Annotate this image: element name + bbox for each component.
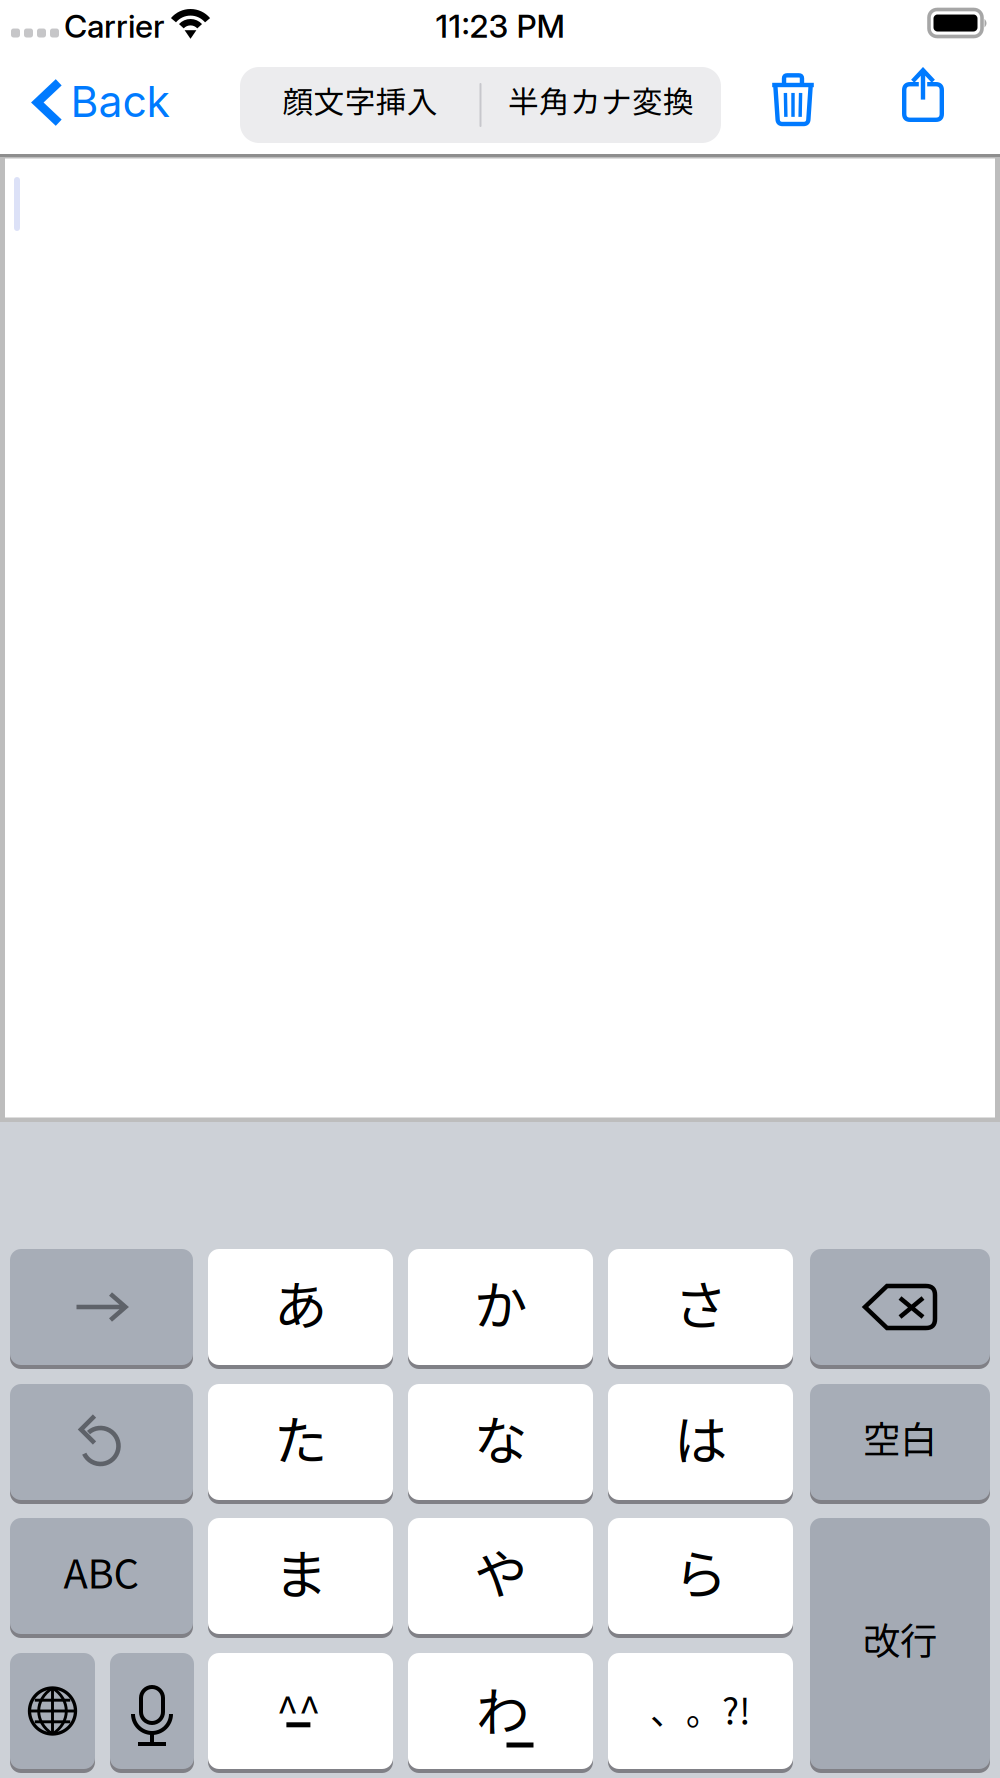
button[interactable]: わ: [408, 1651, 593, 1771]
staticText: ABC: [63, 1542, 139, 1600]
button[interactable]: 、。?!: [608, 1651, 793, 1771]
staticText: 、。?!: [650, 1683, 751, 1735]
button[interactable]: 顔文字挿入: [240, 67, 480, 143]
button[interactable]: Undo: [10, 1382, 193, 1502]
staticText: さ: [674, 1263, 727, 1341]
button[interactable]: 半角カナ変換: [480, 67, 721, 143]
button[interactable]: Delete: [747, 50, 839, 148]
staticText: 顔文字挿入: [282, 78, 437, 122]
button[interactable]: Back: [0, 56, 190, 154]
button[interactable]: あ: [208, 1247, 393, 1367]
staticText: Back: [70, 76, 169, 127]
button[interactable]: ま: [208, 1516, 393, 1636]
staticText: ^^: [276, 1680, 320, 1738]
button[interactable]: Delete: [810, 1247, 990, 1367]
button[interactable]: ABC: [10, 1516, 193, 1636]
button[interactable]: Share: [877, 46, 969, 144]
button[interactable]: か: [408, 1247, 593, 1367]
staticText: な: [474, 1398, 527, 1476]
button[interactable]: た: [208, 1382, 393, 1502]
staticText: は: [674, 1398, 727, 1476]
staticText: 改行: [863, 1611, 937, 1666]
button[interactable]: 改行: [810, 1516, 990, 1771]
button[interactable]: ら: [608, 1516, 793, 1636]
button[interactable]: Next candidate: [10, 1247, 193, 1367]
staticText: 11:23 PM: [435, 7, 564, 45]
staticText: Carrier: [64, 7, 165, 45]
button[interactable]: な: [408, 1382, 593, 1502]
staticText: わ: [476, 1670, 529, 1747]
staticText: 空白: [863, 1410, 937, 1464]
button[interactable]: Next keyboard: [10, 1651, 95, 1771]
staticText: ま: [274, 1532, 327, 1610]
staticText: 半角カナ変換: [508, 78, 694, 122]
button[interactable]: 空白: [810, 1382, 990, 1502]
button[interactable]: ^^: [208, 1651, 393, 1771]
staticText: た: [274, 1398, 327, 1476]
button[interactable]: は: [608, 1382, 793, 1502]
button[interactable]: Dictation: [110, 1651, 194, 1771]
button[interactable]: さ: [608, 1247, 793, 1367]
staticText: か: [474, 1263, 527, 1341]
button[interactable]: や: [408, 1516, 593, 1636]
staticText: ら: [674, 1532, 727, 1610]
staticText: や: [474, 1532, 527, 1610]
staticText: あ: [274, 1263, 327, 1341]
